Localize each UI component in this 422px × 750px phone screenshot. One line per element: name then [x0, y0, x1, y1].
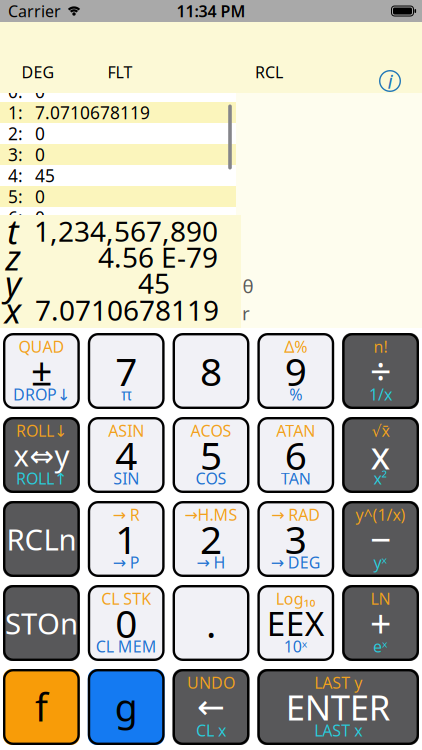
staticText: 9 — [285, 345, 307, 397]
staticText: 7.0710678119 — [35, 101, 150, 124]
button[interactable]: 2 — [173, 501, 249, 577]
staticText: 0: — [8, 80, 23, 103]
staticText: ÷ — [370, 346, 391, 396]
staticText: . — [206, 597, 216, 649]
button[interactable]: ← — [173, 669, 249, 745]
staticText: 11:34 PM — [176, 0, 245, 22]
button[interactable]: STOn — [3, 585, 80, 661]
staticText: 3: — [8, 143, 23, 166]
staticText: 2 — [200, 513, 222, 565]
staticText: COS — [195, 468, 226, 489]
staticText: yˣ — [374, 552, 388, 573]
staticText: 1: — [8, 101, 23, 124]
staticText: 4: — [8, 164, 23, 187]
button[interactable]: x⇔y — [3, 417, 80, 493]
staticText: LAST y — [314, 672, 362, 693]
staticText: x² — [374, 468, 388, 489]
button[interactable]: 4 — [88, 417, 165, 493]
staticText: 0 — [115, 597, 137, 649]
staticText: → P — [113, 552, 140, 573]
button[interactable]: 1 — [88, 501, 165, 577]
staticText: 7 — [115, 345, 137, 397]
staticText: 4 — [115, 429, 137, 481]
staticText: √x̄ — [372, 420, 390, 441]
staticText: QUAD — [18, 336, 64, 357]
staticText: 2: — [8, 122, 23, 145]
staticText: i — [387, 68, 392, 94]
button[interactable]: 8 — [173, 333, 249, 409]
button[interactable]: ± — [3, 333, 80, 409]
staticText: LN — [371, 588, 391, 609]
staticText: x⇔y — [13, 435, 69, 474]
staticText: → DEG — [271, 552, 321, 573]
staticText: t — [7, 208, 19, 254]
staticText: r — [242, 301, 250, 325]
staticText: % — [289, 384, 302, 405]
staticText: 4.56 E-79 — [98, 238, 218, 276]
button[interactable]: 7 — [88, 333, 165, 409]
staticText: Carrier — [8, 0, 61, 22]
staticText: 3 — [285, 513, 307, 565]
staticText: 0 — [35, 122, 45, 145]
button[interactable]: g — [88, 669, 165, 745]
staticText: SIN — [113, 468, 139, 489]
staticText: θ — [242, 274, 253, 298]
staticText: z — [5, 234, 20, 280]
staticText: Log₁₀ — [276, 588, 316, 609]
staticText: f — [35, 682, 48, 732]
staticText: g — [115, 682, 138, 732]
button[interactable]: . — [173, 585, 249, 661]
staticText: 1 — [115, 513, 137, 565]
staticText: ENTER — [286, 684, 391, 730]
button[interactable]: ÷ — [342, 333, 419, 409]
staticText: LAST x — [314, 720, 362, 741]
staticText: 1/x — [369, 384, 392, 405]
staticText: ROLL↓ — [16, 420, 67, 441]
staticText: → R — [113, 504, 140, 525]
staticText: + — [370, 598, 391, 648]
button[interactable]: 6 — [257, 417, 334, 493]
staticText: RCL — [255, 61, 283, 83]
staticText: → H — [196, 552, 225, 573]
staticText: 0 — [35, 80, 45, 103]
staticText: → RAD — [271, 504, 320, 525]
staticText: UNDO — [187, 672, 235, 693]
button[interactable]: + — [342, 585, 419, 661]
button[interactable]: f — [3, 669, 80, 745]
staticText: n! — [374, 336, 388, 357]
staticText: 7.0710678119 — [35, 291, 219, 329]
button[interactable]: ENTER — [257, 669, 419, 745]
staticText: 6 — [285, 429, 307, 481]
staticText: y — [5, 260, 21, 306]
button[interactable]: − — [342, 501, 419, 577]
staticText: 0 — [35, 143, 45, 166]
staticText: DEG — [21, 61, 54, 83]
staticText: 45 — [138, 264, 170, 302]
staticText: π — [121, 384, 131, 405]
staticText: →H.MS — [184, 504, 237, 525]
staticText: 10ˣ — [284, 636, 308, 657]
staticText: 5 — [200, 429, 222, 481]
button[interactable]: 0 — [88, 585, 165, 661]
staticText: CL MEM — [96, 636, 157, 657]
staticText: ASIN — [108, 420, 144, 441]
staticText: 6: — [8, 206, 23, 229]
button[interactable]: EEX — [257, 585, 334, 661]
button[interactable]: 5 — [173, 417, 249, 493]
staticText: 0 — [35, 206, 45, 229]
button[interactable]: i — [379, 70, 401, 92]
staticText: 45 — [35, 164, 55, 187]
staticText: STOn — [5, 603, 78, 642]
staticText: TAN — [281, 468, 311, 489]
staticText: y^(1/x) — [356, 504, 406, 525]
staticText: RCLn — [6, 519, 76, 558]
staticText: ± — [31, 346, 52, 396]
staticText: eˣ — [373, 636, 388, 657]
button[interactable]: RCLn — [3, 501, 80, 577]
staticText: ROLL↑ — [16, 468, 67, 489]
staticText: CL STK — [101, 588, 151, 609]
staticText: 5: — [8, 185, 23, 208]
button[interactable]: 9 — [257, 333, 334, 409]
button[interactable]: 3 — [257, 501, 334, 577]
button[interactable]: x — [342, 417, 419, 493]
